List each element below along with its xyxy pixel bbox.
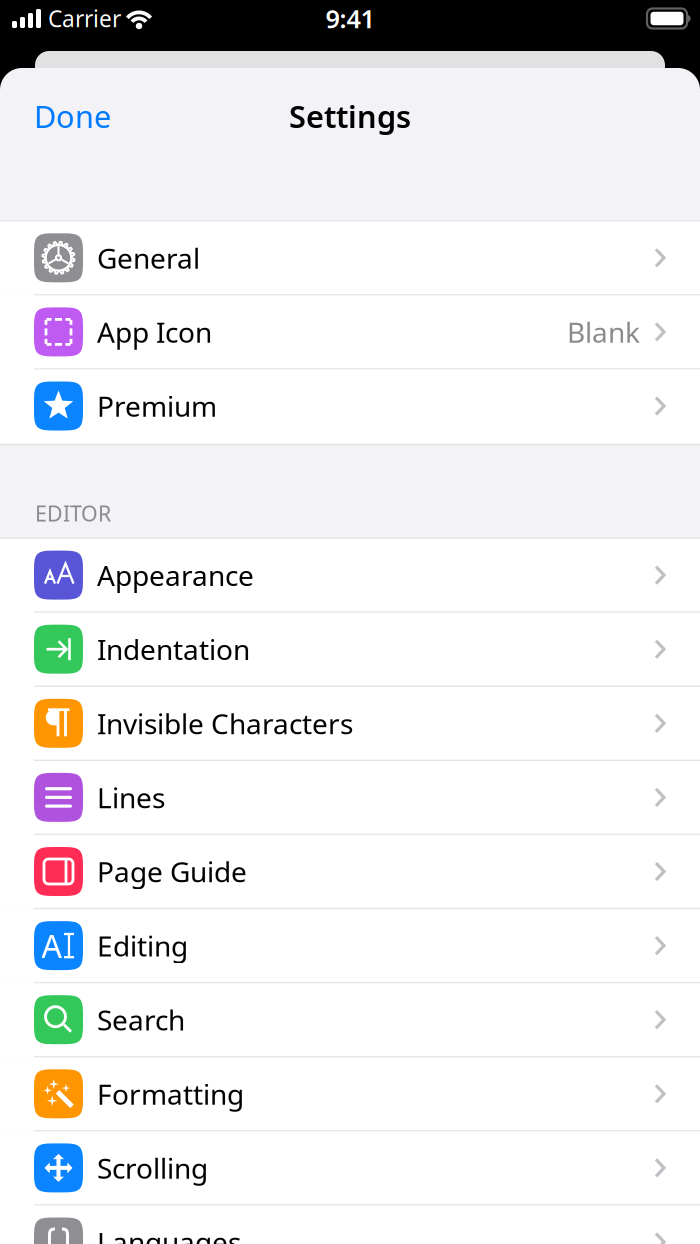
staticText: Editing — [97, 927, 188, 964]
staticText: Settings — [289, 96, 411, 136]
staticText: App Icon — [97, 313, 212, 350]
button[interactable]: Lines — [0, 761, 700, 835]
staticText: Lines — [97, 779, 165, 816]
staticText: Languages — [97, 1223, 241, 1244]
button[interactable]: Search — [0, 983, 700, 1057]
staticText: Search — [97, 1001, 185, 1038]
staticText: Page Guide — [97, 853, 247, 890]
staticText: Premium — [97, 387, 217, 425]
button[interactable]: Done — [34, 96, 111, 136]
button[interactable]: Formatting — [0, 1057, 700, 1132]
button[interactable]: A — [0, 909, 700, 983]
button[interactable]: General — [0, 221, 700, 296]
button[interactable]: Scrolling — [0, 1132, 700, 1206]
button[interactable]: Appearance — [0, 539, 700, 613]
button[interactable]: App Icon — [0, 296, 700, 370]
staticText: Blank — [567, 313, 640, 350]
staticText: Done — [34, 96, 111, 136]
staticText: Scrolling — [97, 1149, 208, 1186]
staticText: Invisible Characters — [97, 705, 353, 742]
button[interactable]: Invisible Characters — [0, 687, 700, 761]
staticText: 9:41 — [325, 2, 374, 35]
button[interactable]: Languages — [0, 1206, 700, 1244]
button[interactable]: Premium — [0, 370, 700, 444]
staticText: Carrier — [48, 3, 121, 33]
staticText: A — [41, 924, 61, 967]
button[interactable]: Indentation — [0, 613, 700, 687]
staticText: EDITOR — [35, 499, 111, 527]
staticText: Indentation — [97, 631, 250, 668]
staticText: Appearance — [97, 556, 254, 594]
staticText: General — [97, 239, 200, 276]
staticText: Formatting — [97, 1075, 244, 1112]
button[interactable]: Page Guide — [0, 835, 700, 909]
